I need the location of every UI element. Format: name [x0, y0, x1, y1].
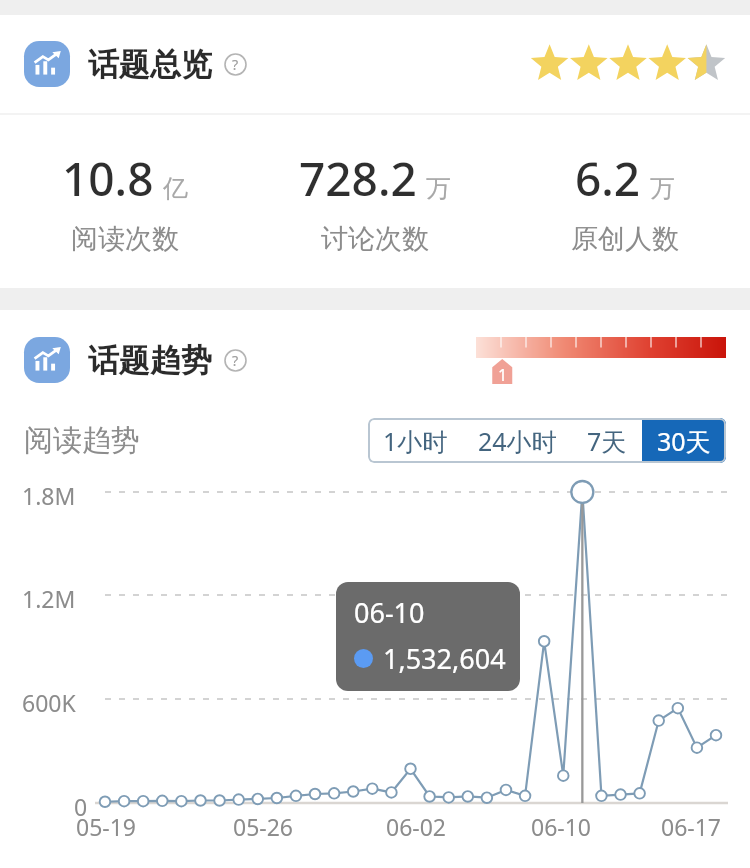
staticText: 05-19: [76, 811, 137, 842]
button[interactable]: 话题趋势: [24, 337, 247, 383]
staticText: 万: [650, 173, 675, 204]
button[interactable]: 24小时: [463, 418, 572, 463]
staticText: 600K: [22, 687, 76, 718]
button[interactable]: 帮助说明: [224, 53, 247, 76]
staticText: 亿: [163, 173, 188, 204]
staticText: 1小时: [383, 424, 448, 458]
staticText: 0: [74, 791, 88, 822]
button[interactable]: 1小时: [368, 418, 463, 463]
staticText: 06-10: [354, 594, 425, 631]
staticText: 原创人数: [571, 222, 679, 256]
staticText: 30天: [657, 424, 711, 458]
staticText: 阅读趋势: [24, 422, 140, 459]
staticText: 话题总览: [88, 45, 212, 84]
staticText: ?: [232, 351, 239, 370]
button[interactable]: 帮助说明: [224, 349, 247, 372]
staticText: 06-10: [531, 811, 592, 842]
button[interactable]: 10.8: [0, 147, 250, 256]
staticText: 1.8M: [22, 480, 76, 511]
staticText: 05-26: [233, 811, 294, 842]
staticText: 7天: [587, 424, 627, 458]
staticText: 讨论次数: [321, 222, 429, 256]
staticText: 10.8: [62, 147, 154, 210]
button[interactable]: 话题总览: [0, 15, 750, 113]
staticText: 6.2: [575, 147, 641, 210]
staticText: 话题趋势: [88, 341, 212, 380]
staticText: 1: [498, 364, 508, 386]
staticText: 阅读次数: [71, 222, 179, 256]
staticText: 24小时: [478, 424, 557, 458]
button[interactable]: 30天: [642, 418, 726, 463]
staticText: 1.2M: [22, 583, 76, 614]
staticText: 万: [426, 173, 451, 204]
button[interactable]: 7天: [572, 418, 642, 463]
button[interactable]: 6.2: [500, 147, 750, 256]
staticText: 1,532,604: [383, 640, 506, 677]
staticText: 06-17: [661, 811, 722, 842]
staticText: 728.2: [299, 147, 417, 210]
button[interactable]: 728.2: [250, 147, 500, 256]
staticText: ?: [232, 55, 239, 74]
staticText: 06-02: [386, 811, 447, 842]
